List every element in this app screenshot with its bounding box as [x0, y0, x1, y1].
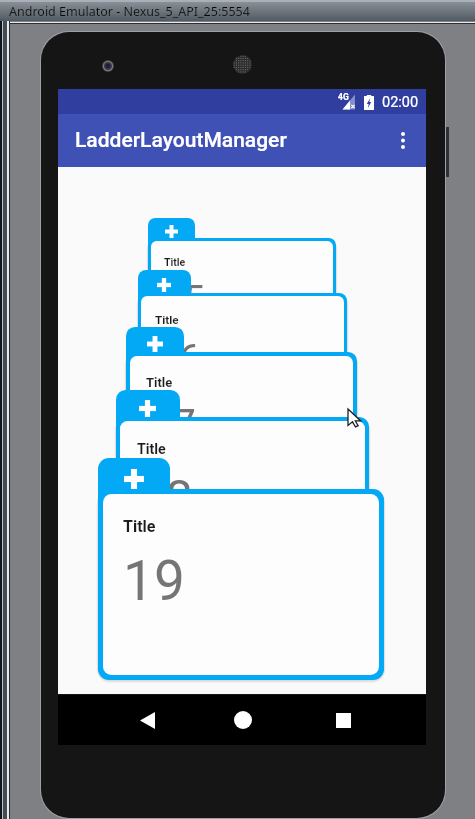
staticText: Title [155, 313, 179, 327]
staticText: 02:00 [382, 94, 419, 111]
staticText: 16 [156, 336, 202, 383]
button[interactable]: Title [138, 270, 347, 432]
staticText: 19 [123, 549, 185, 613]
button[interactable]: Home [210, 695, 275, 745]
staticText: Title [137, 441, 166, 458]
staticText: 4G [338, 92, 349, 102]
button[interactable]: Title [148, 218, 336, 364]
staticText: 18 [138, 469, 193, 526]
button[interactable]: Title [98, 458, 384, 680]
button[interactable]: More options [380, 114, 426, 167]
button[interactable]: Back [115, 695, 180, 745]
staticText: LadderLayoutManager [75, 128, 287, 153]
staticText: 17 [146, 400, 196, 452]
staticText: Title [123, 517, 156, 536]
button[interactable]: Title [116, 390, 369, 587]
staticText: 15 [164, 277, 205, 319]
staticText: Android Emulator - Nexus_5_API_25:5554 [9, 3, 250, 20]
button[interactable]: Recent apps [311, 695, 376, 745]
button[interactable]: Title [126, 327, 357, 506]
staticText: Title [146, 375, 173, 390]
staticText: Title [164, 256, 186, 268]
